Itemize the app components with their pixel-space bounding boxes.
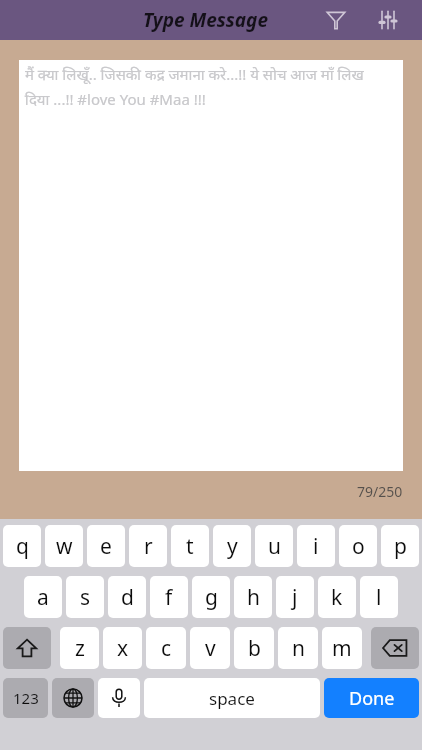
button[interactable]: d	[108, 576, 146, 618]
staticText: space	[209, 687, 255, 710]
button[interactable]: Done	[324, 678, 419, 718]
staticText: l	[376, 583, 382, 612]
staticText: 79/250	[357, 482, 403, 501]
staticText: h	[247, 583, 260, 612]
staticText: f	[165, 583, 173, 612]
button[interactable]: मैं क्या लिखूँ.. जिसकी कद्र जमाना करे...…	[19, 60, 403, 471]
staticText: q	[16, 532, 29, 561]
staticText: a	[37, 583, 49, 612]
staticText: b	[248, 634, 261, 663]
staticText: Type Message	[143, 7, 268, 33]
button[interactable]: o	[339, 525, 377, 567]
button[interactable]: Change keyboard language	[52, 678, 94, 718]
button[interactable]: Voice input	[98, 678, 140, 718]
staticText: r	[144, 532, 153, 561]
staticText: n	[292, 634, 305, 663]
staticText: मैं क्या लिखूँ.. जिसकी कद्र जमाना करे...…	[25, 64, 399, 109]
button[interactable]: f	[150, 576, 188, 618]
button[interactable]: t	[171, 525, 209, 567]
button[interactable]: space	[144, 678, 320, 718]
button[interactable]: Backspace	[371, 627, 419, 669]
staticText: i	[313, 532, 319, 561]
button[interactable]: u	[255, 525, 293, 567]
button[interactable]: g	[192, 576, 230, 618]
staticText: g	[205, 583, 218, 612]
button[interactable]: h	[234, 576, 272, 618]
button[interactable]: n	[278, 627, 318, 669]
staticText: w	[56, 532, 73, 561]
button[interactable]: m	[322, 627, 362, 669]
staticText: y	[227, 532, 238, 561]
button[interactable]: l	[360, 576, 398, 618]
button[interactable]: z	[60, 627, 99, 669]
button[interactable]: e	[87, 525, 125, 567]
staticText: p	[394, 532, 407, 561]
staticText: m	[332, 634, 352, 663]
staticText: s	[80, 583, 91, 612]
button[interactable]: c	[146, 627, 186, 669]
staticText: v	[205, 634, 216, 663]
staticText: o	[352, 532, 365, 561]
button[interactable]: p	[381, 525, 419, 567]
staticText: k	[331, 583, 343, 612]
staticText: t	[186, 532, 194, 561]
staticText: x	[117, 634, 129, 663]
staticText: Done	[349, 686, 395, 711]
staticText: 123	[13, 688, 39, 708]
button[interactable]: Filter	[316, 0, 356, 40]
button[interactable]: k	[318, 576, 356, 618]
button[interactable]: v	[190, 627, 230, 669]
button[interactable]: w	[45, 525, 83, 567]
staticText: u	[268, 532, 281, 561]
button[interactable]: s	[66, 576, 104, 618]
button[interactable]: x	[103, 627, 142, 669]
button[interactable]: b	[234, 627, 274, 669]
button[interactable]: y	[213, 525, 251, 567]
staticText: d	[121, 583, 134, 612]
button[interactable]: Settings	[368, 0, 408, 40]
button[interactable]: 123	[3, 678, 48, 718]
staticText: j	[292, 583, 298, 612]
button[interactable]: j	[276, 576, 314, 618]
button[interactable]: i	[297, 525, 335, 567]
button[interactable]: Shift	[3, 627, 51, 669]
button[interactable]: q	[3, 525, 41, 567]
button[interactable]: r	[129, 525, 167, 567]
button[interactable]: a	[24, 576, 62, 618]
staticText: z	[75, 634, 85, 663]
staticText: c	[161, 634, 172, 663]
staticText: e	[100, 532, 112, 561]
